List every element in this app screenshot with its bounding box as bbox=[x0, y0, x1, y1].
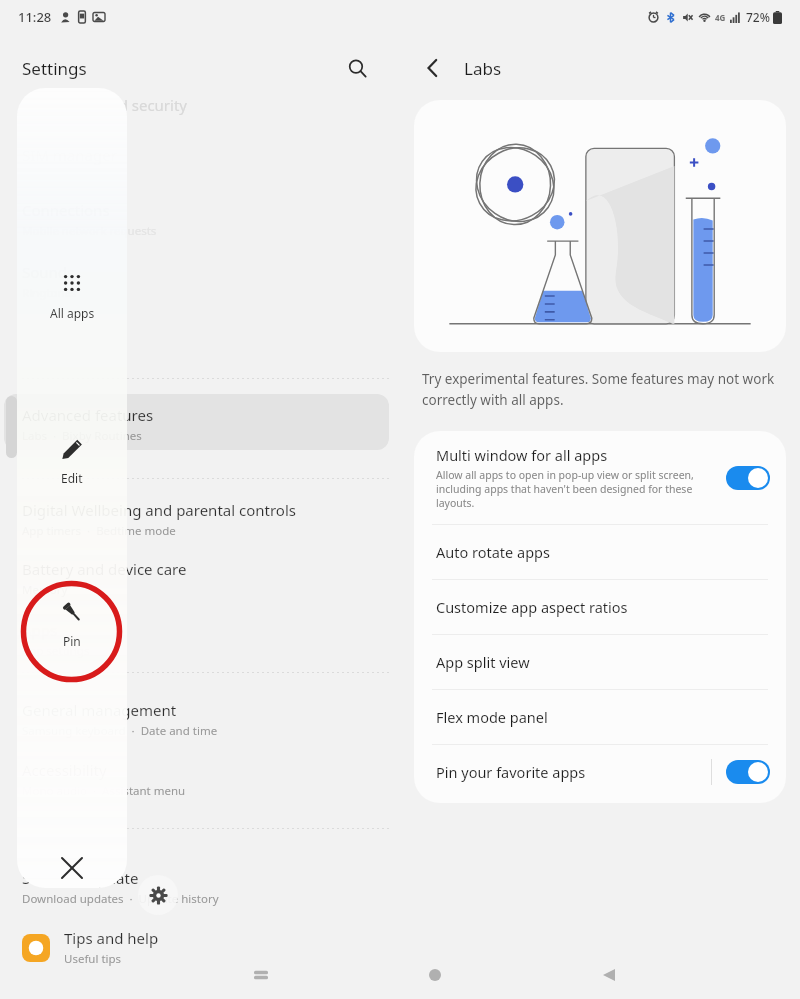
staticText: Accounts · Smart Switch bbox=[22, 428, 157, 444]
staticText: Digital Wellbeing and parental controls bbox=[22, 500, 296, 520]
staticText: Download updates · Update history bbox=[22, 891, 219, 907]
button[interactable]: Pin your favorite apps bbox=[414, 745, 786, 799]
staticText: Customize app aspect ratios bbox=[436, 597, 628, 617]
staticText: Pin your favorite apps bbox=[436, 762, 711, 782]
staticText: Tips and help bbox=[64, 928, 159, 948]
staticText: Ringtones bbox=[22, 285, 77, 301]
staticText: Accounts and backup bbox=[22, 405, 173, 425]
staticText: Settings bbox=[22, 57, 87, 80]
staticText: Auto rotate apps bbox=[436, 542, 550, 562]
staticText: Battery and device care bbox=[22, 559, 187, 579]
button[interactable]: Edit bbox=[17, 438, 127, 486]
button[interactable]: Home bbox=[348, 951, 522, 999]
button[interactable]: Customize app aspect ratios bbox=[414, 580, 786, 634]
button[interactable]: Multi window for all apps bbox=[414, 431, 786, 524]
button[interactable]: Pin bbox=[17, 601, 127, 649]
button[interactable]: Back bbox=[522, 951, 696, 999]
staticText: All apps bbox=[50, 305, 95, 321]
button[interactable]: Recents bbox=[174, 951, 348, 999]
staticText: Biometrics and security bbox=[22, 95, 188, 115]
staticText: Mobile network requests bbox=[22, 223, 157, 239]
button[interactable]: Flex mode panel bbox=[414, 690, 786, 744]
button[interactable]: Back bbox=[416, 51, 450, 85]
staticText: Software update bbox=[22, 868, 139, 888]
staticText: General management bbox=[22, 700, 177, 720]
staticText: Labs bbox=[464, 57, 502, 80]
staticText: Allow all apps to open in pop-up view or… bbox=[436, 468, 714, 510]
staticText: Multi window for all apps bbox=[436, 445, 608, 465]
staticText: 4G bbox=[715, 12, 726, 23]
button[interactable]: Settings bbox=[138, 875, 178, 915]
button[interactable]: Search bbox=[340, 51, 374, 85]
staticText: Advanced features bbox=[22, 405, 154, 425]
button[interactable]: App split view bbox=[414, 635, 786, 689]
staticText: Useful tips bbox=[64, 951, 122, 967]
staticText: App timers · Bedtime mode bbox=[22, 523, 176, 539]
staticText: Edit bbox=[61, 470, 83, 486]
staticText: Mono audio · Assistant menu bbox=[22, 783, 186, 799]
button[interactable] bbox=[726, 760, 770, 784]
staticText: App settings bbox=[22, 643, 90, 659]
staticText: Try experimental features. Some features… bbox=[422, 370, 778, 409]
button[interactable]: All apps bbox=[17, 273, 127, 321]
button[interactable] bbox=[4, 394, 389, 450]
staticText: Labs · Bixby Routines bbox=[22, 428, 142, 444]
button[interactable]: Drag handle bbox=[6, 396, 17, 458]
button[interactable] bbox=[726, 466, 770, 490]
staticText: Memory bbox=[22, 582, 68, 598]
staticText: Flex mode panel bbox=[436, 707, 548, 727]
button[interactable]: Close bbox=[17, 848, 127, 888]
staticText: 72% bbox=[746, 9, 770, 25]
staticText: Sounds bbox=[22, 262, 75, 282]
staticText: Samsung keyboard · Date and time bbox=[22, 723, 218, 739]
staticText: Pin bbox=[63, 633, 81, 649]
button[interactable]: Auto rotate apps bbox=[414, 525, 786, 579]
staticText: App split view bbox=[436, 652, 530, 672]
staticText: Apps bbox=[22, 620, 58, 640]
staticText: 11:28 bbox=[18, 8, 52, 26]
